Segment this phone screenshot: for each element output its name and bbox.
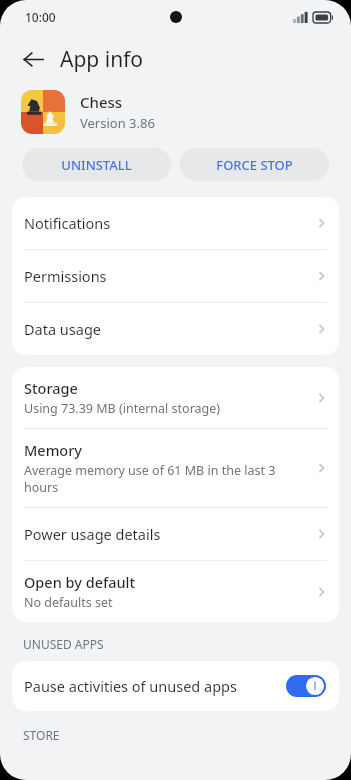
staticText: Version 3.86 — [80, 114, 155, 132]
button[interactable]: FORCE STOP — [180, 148, 329, 181]
staticText: App info — [60, 45, 144, 74]
staticText: Open by default — [24, 572, 136, 592]
button[interactable]: Memory — [12, 429, 339, 507]
staticText: Permissions — [24, 266, 315, 286]
button[interactable]: Pause activities of unused apps toggle — [286, 675, 326, 697]
staticText: FORCE STOP — [216, 156, 293, 174]
staticText: Using 73.39 MB (internal storage) — [24, 400, 221, 417]
staticText: 10:00 — [25, 9, 56, 25]
button[interactable]: UNINSTALL — [22, 148, 171, 181]
staticText: UNINSTALL — [61, 156, 132, 174]
staticText: Power usage details — [24, 524, 315, 544]
staticText: Pause activities of unused apps — [24, 676, 286, 696]
button[interactable]: Pause activities of unused apps — [12, 661, 339, 711]
staticText: Average memory use of 61 MB in the last … — [24, 462, 309, 496]
staticText: Data usage — [24, 319, 315, 339]
button[interactable]: Open by default — [12, 561, 339, 622]
staticText: Notifications — [24, 213, 315, 233]
button[interactable]: Power usage details — [12, 508, 339, 560]
staticText: No defaults set — [24, 594, 113, 611]
staticText: UNUSED APPS — [23, 636, 104, 652]
staticText: STORE — [23, 727, 60, 743]
button[interactable]: Back — [14, 40, 52, 78]
button[interactable]: Notifications — [12, 197, 339, 249]
staticText: Storage — [24, 378, 78, 398]
staticText: Chess — [80, 92, 123, 112]
staticText: Memory — [24, 440, 83, 460]
button[interactable]: Storage — [12, 367, 339, 428]
button[interactable]: Permissions — [12, 250, 339, 302]
button[interactable]: Data usage — [12, 303, 339, 355]
